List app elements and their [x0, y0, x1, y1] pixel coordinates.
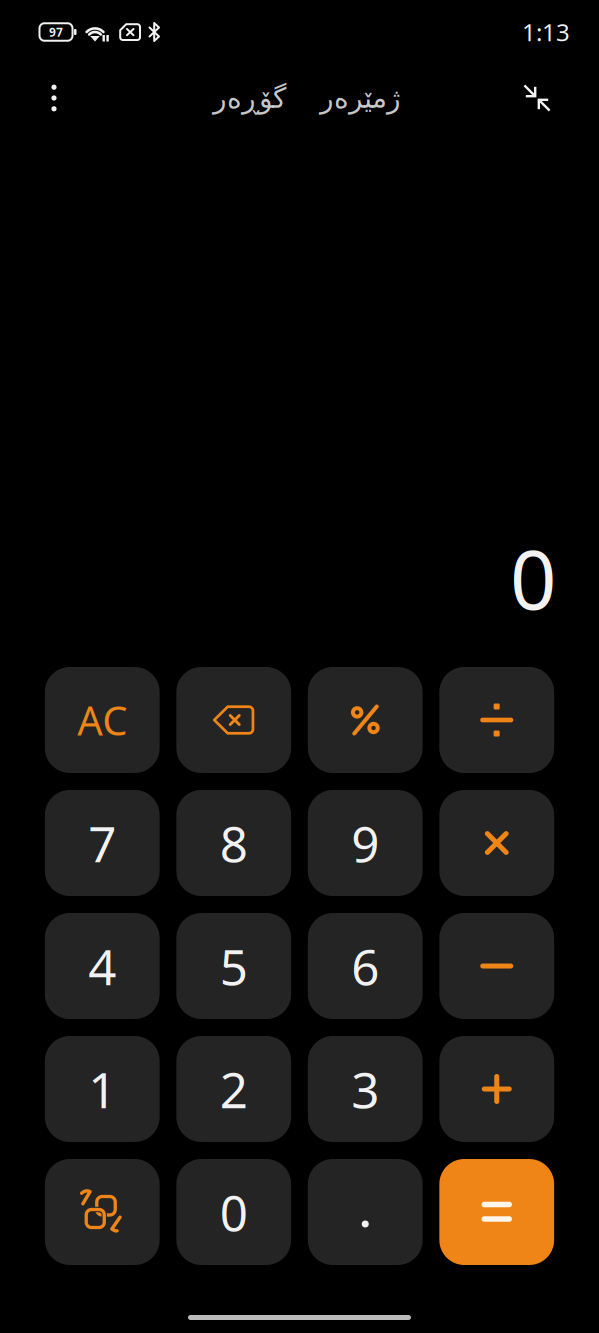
button[interactable]: 0 — [176, 1159, 291, 1265]
button[interactable]: 5 — [176, 913, 291, 1019]
staticText: 0 — [510, 523, 557, 633]
button[interactable]: Convert — [45, 1159, 160, 1265]
button[interactable]: Decimal point — [308, 1159, 423, 1265]
button[interactable]: 3 — [308, 1036, 423, 1142]
button[interactable]: 6 — [308, 913, 423, 1019]
button[interactable]: 4 — [45, 913, 160, 1019]
staticText: 6 — [351, 932, 379, 1000]
staticText: 1:13 — [522, 16, 570, 48]
button[interactable]: Multiply — [439, 790, 554, 896]
button[interactable]: Delete — [176, 667, 291, 773]
staticText: ژمێرەر گۆڕەر — [212, 82, 400, 114]
button[interactable]: 2 — [176, 1036, 291, 1142]
button[interactable]: Subtract — [439, 913, 554, 1019]
staticText: 9 — [351, 809, 379, 877]
button[interactable]: 7 — [45, 790, 160, 896]
staticText: 0 — [220, 1178, 248, 1246]
button[interactable]: AC — [45, 667, 160, 773]
button[interactable]: 8 — [176, 790, 291, 896]
staticText: 3 — [351, 1055, 379, 1123]
staticText: 97 — [49, 24, 63, 40]
button[interactable]: 9 — [308, 790, 423, 896]
button[interactable]: Percent — [308, 667, 423, 773]
button[interactable]: 1 — [45, 1036, 160, 1142]
button[interactable]: Divide — [439, 667, 554, 773]
button[interactable]: Equals — [439, 1159, 554, 1265]
staticText: 4 — [88, 932, 116, 1000]
staticText: 2 — [220, 1055, 248, 1123]
staticText: AC — [77, 693, 127, 747]
button[interactable]: More options — [37, 76, 71, 120]
staticText: 5 — [220, 932, 248, 1000]
button[interactable]: Collapse — [523, 84, 551, 112]
staticText: 7 — [88, 809, 116, 877]
staticText: 1 — [88, 1055, 116, 1123]
staticText: 8 — [220, 809, 248, 877]
button[interactable]: Add — [439, 1036, 554, 1142]
